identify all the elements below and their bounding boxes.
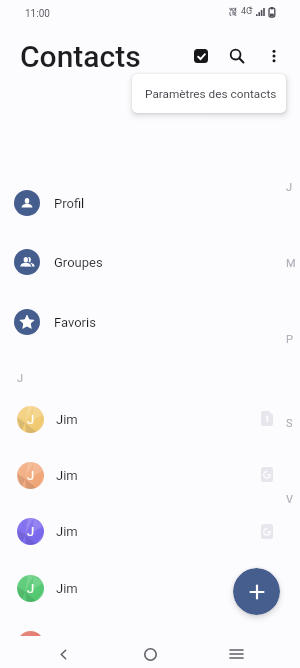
- staticText: J: [17, 372, 24, 385]
- button[interactable]: J: [0, 564, 300, 612]
- button[interactable]: Select contacts: [186, 41, 215, 70]
- staticText: P: [286, 333, 293, 346]
- staticText: S: [286, 417, 293, 430]
- button[interactable]: Profil: [0, 179, 300, 227]
- button[interactable]: Recent apps: [222, 640, 250, 668]
- staticText: Profil: [54, 196, 85, 211]
- staticText: Contacts: [20, 39, 141, 74]
- button[interactable]: More options: [259, 41, 288, 70]
- staticText: J: [27, 468, 35, 483]
- staticText: Groupes: [54, 255, 103, 270]
- staticText: Jim: [56, 524, 78, 539]
- staticText: Jim: [56, 412, 78, 427]
- staticText: Jim: [56, 468, 78, 483]
- staticText: J: [27, 581, 35, 596]
- staticText: 4G: [241, 6, 253, 17]
- button[interactable]: Back: [49, 640, 77, 668]
- button[interactable]: J: [0, 451, 300, 499]
- button[interactable]: Paramètres des contacts: [132, 74, 286, 113]
- button[interactable]: Add contact: [233, 568, 280, 615]
- button[interactable]: Groupes: [0, 238, 300, 286]
- staticText: Jim: [56, 581, 78, 596]
- staticText: J: [27, 412, 35, 427]
- staticText: J: [27, 524, 35, 539]
- staticText: Paramètres des contacts: [145, 87, 277, 101]
- button[interactable]: Favoris: [0, 298, 300, 346]
- staticText: +: [249, 5, 253, 13]
- button[interactable]: Search: [222, 41, 251, 70]
- button[interactable]: Home: [136, 640, 164, 668]
- staticText: Favoris: [54, 315, 96, 330]
- button[interactable]: J: [0, 507, 300, 555]
- staticText: 11:00: [25, 8, 50, 20]
- staticText: J: [286, 181, 293, 194]
- staticText: V: [286, 493, 294, 506]
- staticText: M: [286, 257, 296, 270]
- button[interactable]: J: [0, 395, 300, 443]
